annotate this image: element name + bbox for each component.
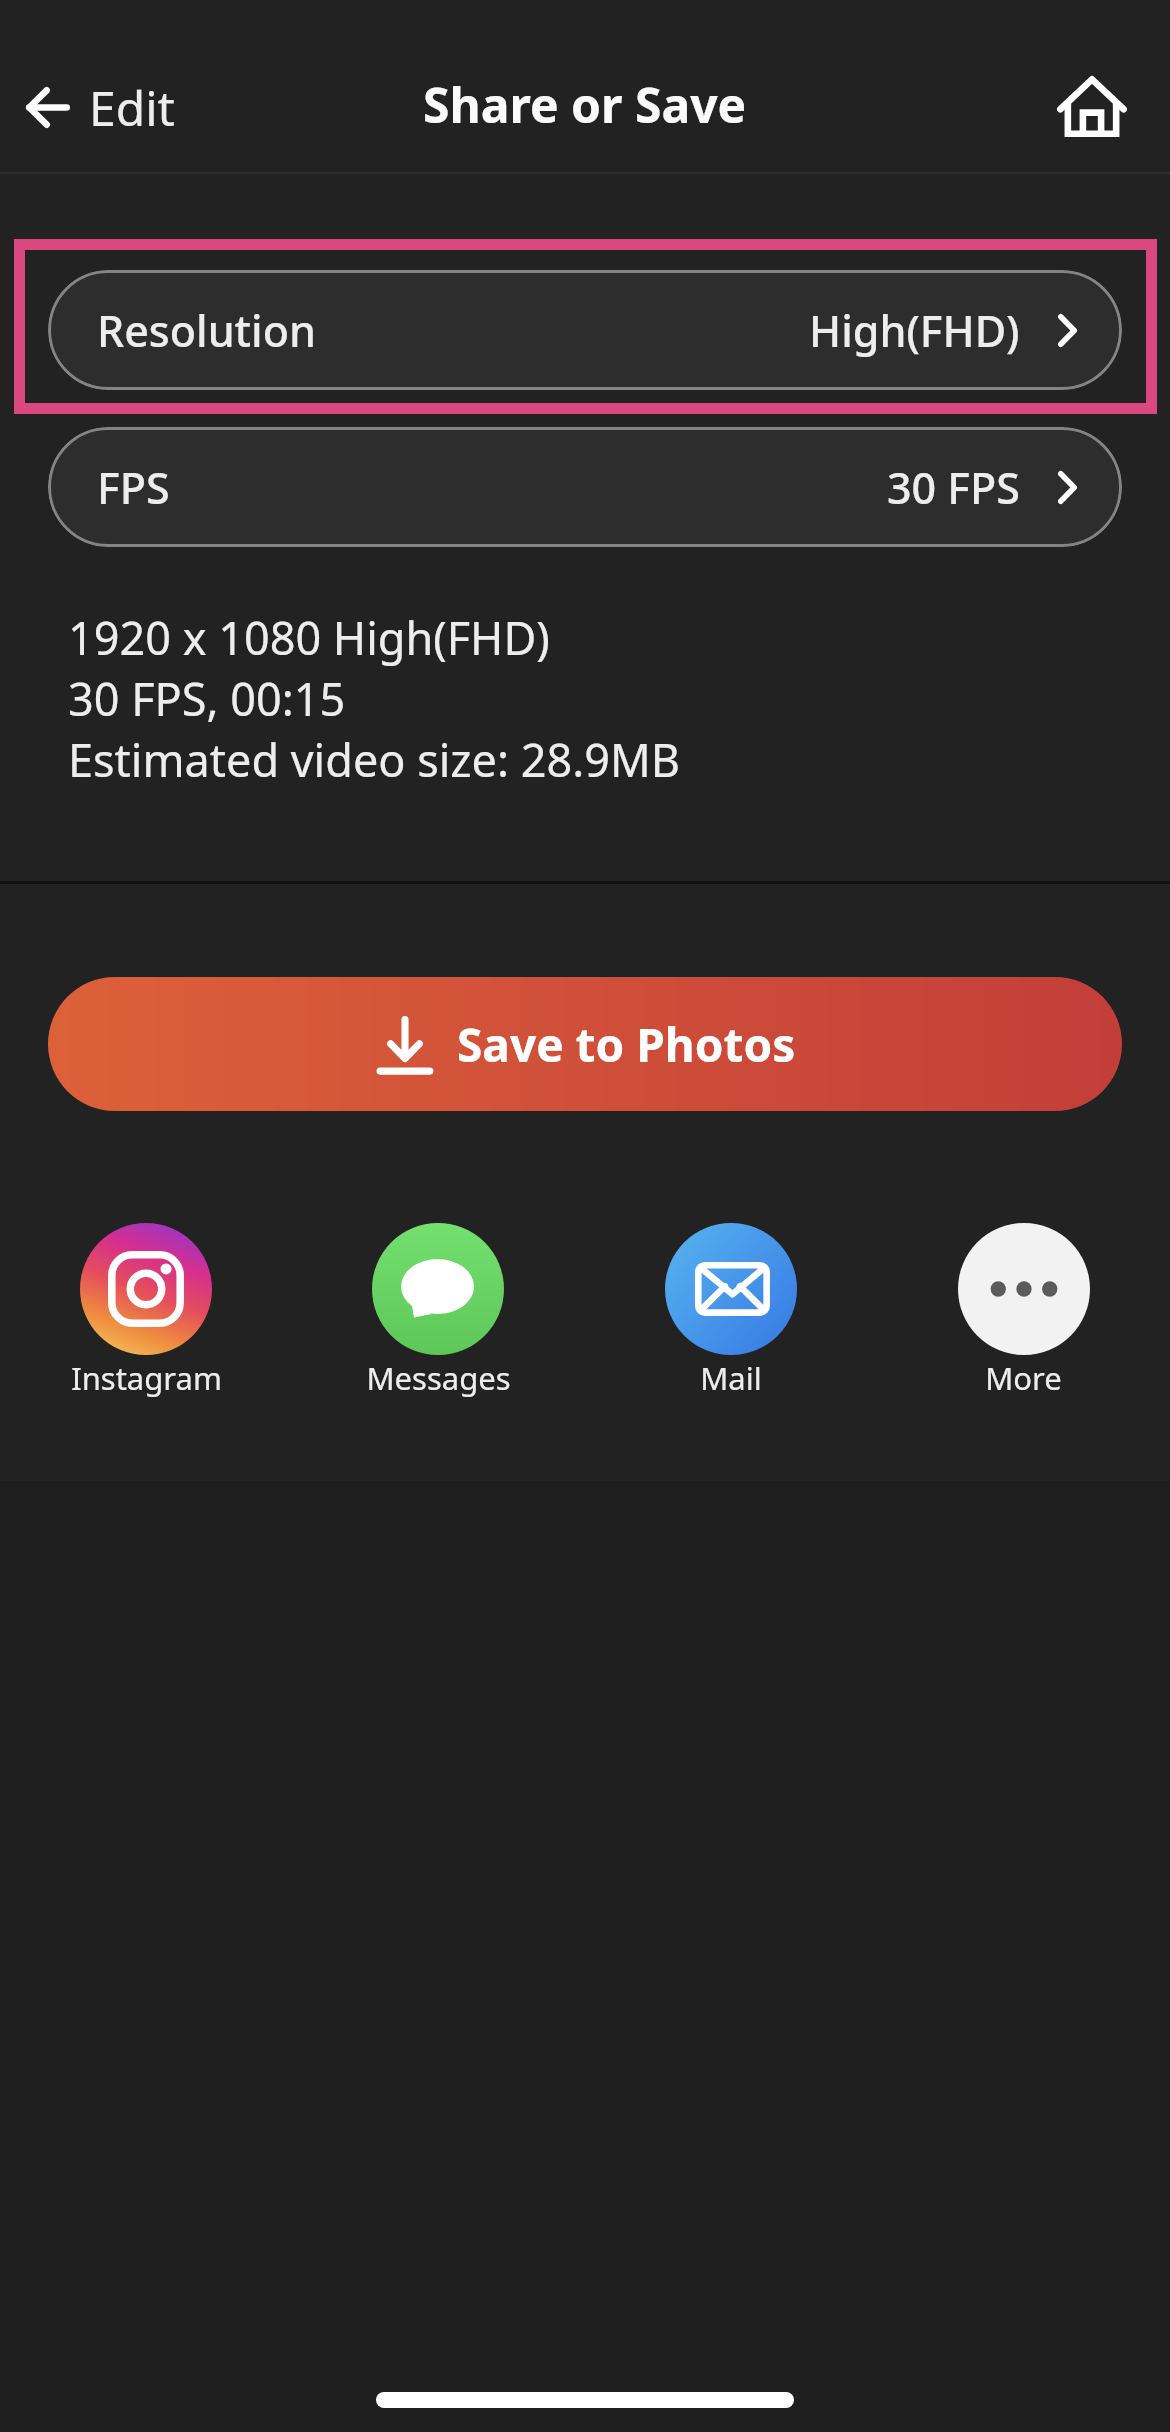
staticText: FPS bbox=[97, 458, 170, 517]
staticText: Share or Save bbox=[423, 72, 747, 137]
button[interactable]: Resolution bbox=[48, 270, 1122, 390]
button[interactable]: More bbox=[877, 1223, 1170, 1399]
staticText: High(FHD) bbox=[809, 301, 1020, 360]
button[interactable]: Home bbox=[1048, 62, 1136, 150]
button[interactable]: Instagram bbox=[0, 1223, 292, 1399]
staticText: 1920 x 1080 High(FHD) bbox=[68, 607, 550, 668]
staticText: Instagram bbox=[71, 1357, 222, 1399]
button[interactable]: Messages bbox=[292, 1223, 584, 1399]
staticText: Estimated video size: 28.9MB bbox=[68, 729, 681, 790]
staticText: Messages bbox=[366, 1357, 511, 1399]
staticText: Edit bbox=[89, 75, 175, 140]
button[interactable]: Edit bbox=[26, 75, 175, 140]
staticText: Save to Photos bbox=[457, 1013, 796, 1076]
staticText: 30 FPS, 00:15 bbox=[68, 668, 346, 729]
staticText: 30 FPS bbox=[887, 458, 1020, 517]
button[interactable]: FPS bbox=[48, 427, 1122, 547]
staticText: Mail bbox=[700, 1357, 762, 1399]
staticText: More bbox=[985, 1357, 1062, 1399]
button[interactable]: Save to Photos bbox=[48, 977, 1122, 1111]
staticText: Resolution bbox=[97, 301, 316, 360]
button[interactable]: Mail bbox=[584, 1223, 877, 1399]
